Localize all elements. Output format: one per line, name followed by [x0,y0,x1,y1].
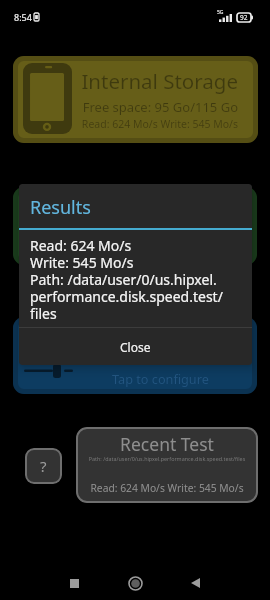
staticText: 92 [240,13,248,22]
button[interactable]: Back [180,568,210,598]
staticText: Free space: 95 Go/115 Go [13,98,238,116]
staticText: Read: 624 Mo/s Write: 545 Mo/s Path: /da… [30,236,223,323]
staticText: Results [30,195,91,220]
staticText: Close [120,339,151,355]
button[interactable] [13,187,257,265]
staticText: Tap to configure [112,370,209,387]
staticText: Read: 624 Mo/s Write: 545 Mo/s [13,117,238,131]
staticText: 5G [217,9,224,16]
button[interactable]: Internal Storage [13,56,258,143]
staticText: Recent Test [76,432,258,456]
button[interactable]: Recent Test [76,427,258,503]
button[interactable]: Recent apps [59,568,89,598]
button[interactable]: Help [25,448,62,484]
button[interactable]: Home [120,568,150,598]
button[interactable]: Close [19,328,252,365]
staticText: Internal Storage [13,67,238,95]
staticText: Path: /data/user/0/us.hipxel.performance… [76,455,258,462]
staticText: Read: 624 Mo/s Write: 545 Mo/s [76,481,258,495]
staticText: 8:54 [14,11,32,23]
staticText: ? [40,456,47,476]
button[interactable]: Tap to configure [13,317,257,394]
